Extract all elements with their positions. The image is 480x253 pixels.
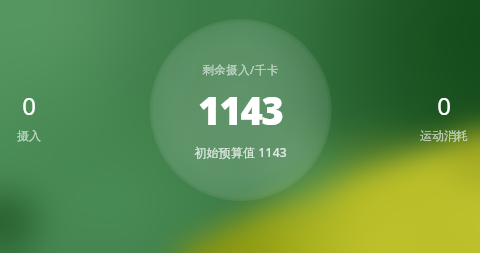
staticText: 0	[22, 89, 36, 122]
button[interactable]: 剩余摄入 1143 千卡	[145, 62, 335, 160]
staticText: 0	[437, 89, 451, 122]
staticText: 运动消耗	[420, 128, 468, 143]
staticText: 摄入	[17, 128, 41, 143]
button[interactable]: 0	[2, 89, 56, 143]
staticText: 1143	[198, 84, 283, 136]
staticText: 剩余摄入/千卡	[202, 62, 279, 78]
staticText: 初始预算值 1143	[194, 144, 287, 160]
button[interactable]: 0	[412, 89, 476, 143]
